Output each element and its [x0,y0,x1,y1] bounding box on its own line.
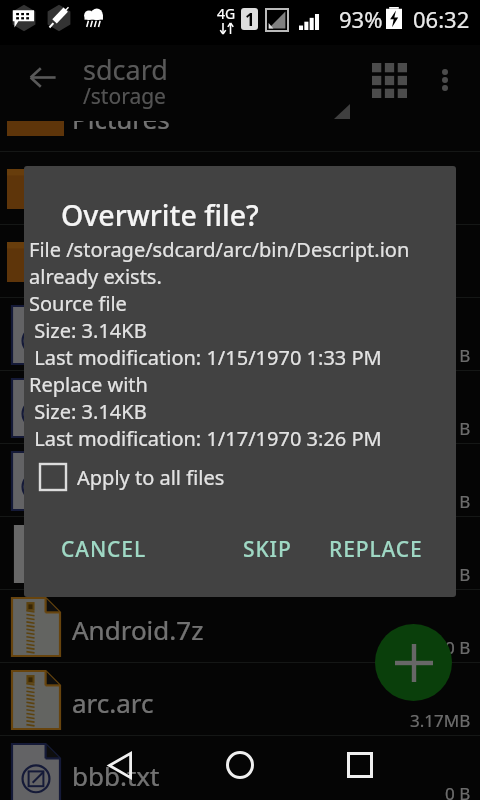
staticText: aaa.txt [72,320,156,355]
staticText: Source file [29,290,127,317]
staticText: sdcard [83,51,168,88]
button[interactable]: Home [206,731,274,799]
button[interactable]: Recent apps [326,731,394,799]
button[interactable]: bb.txt [0,371,480,444]
button[interactable]: Grid view [367,58,411,102]
button[interactable]: Back [86,731,154,799]
button[interactable]: cc.txt [0,444,480,517]
button[interactable]: Podcasts [0,152,480,225]
staticText: Size: 3.14KB [29,317,147,344]
staticText: bb.txt [72,393,144,428]
button[interactable]: CANCEL [47,525,161,574]
button[interactable]: Android.7z [0,590,480,663]
staticText: Android.7z [72,612,204,647]
button[interactable]: Navigate up [21,55,65,99]
staticText: REPLACE [329,535,423,564]
staticText: 4G [217,4,236,23]
staticText: already exists. [29,263,162,290]
button[interactable]: More options [423,58,467,102]
staticText: Podcasts [72,174,181,209]
staticText: Size: 3.14KB [29,398,147,425]
button[interactable]: arc.arc [0,663,480,736]
staticText: 0 B [445,782,471,800]
staticText: 06:32 [413,4,470,34]
button[interactable]: Apply to all files [39,458,225,496]
staticText: 0 B [445,563,471,586]
staticText: Apply to all files [77,464,225,491]
staticText: Ringtones [72,247,196,282]
staticText: arc.arc [72,685,154,720]
staticText: Last modification: 1/17/1970 3:26 PM [29,425,382,452]
button[interactable]: REPLACE [315,525,437,574]
staticText: 1 [245,8,255,30]
staticText: bbb.txt [72,758,160,793]
button[interactable]: Add [375,624,452,701]
staticText: Pictures [72,101,170,136]
staticText: /storage [83,82,166,111]
staticText: Last modification: 1/15/1970 1:33 PM [29,344,382,371]
button[interactable]: aaa.txt [0,298,480,371]
button[interactable]: SKIP [229,525,306,574]
staticText: dd.dat [72,539,151,574]
staticText: Replace with [29,371,148,398]
button[interactable]: bbb.txt [0,736,480,800]
staticText: 3.17MB [410,709,471,732]
staticText: SKIP [243,535,292,564]
button[interactable]: Pictures [0,79,480,152]
button[interactable]: Ringtones [0,225,480,298]
button[interactable]: dd.dat [0,517,480,590]
staticText: File /storage/sdcard/arc/bin/Descript.io… [29,236,410,263]
staticText: 93% [339,4,383,34]
staticText: 0 B [445,417,471,440]
staticText: cc.txt [72,466,137,501]
staticText: CANCEL [61,535,147,564]
staticText: 0 B [445,490,471,513]
staticText: Overwrite file? [61,196,259,235]
staticText: 0 B [445,344,471,367]
staticText: 0 B [445,636,471,659]
